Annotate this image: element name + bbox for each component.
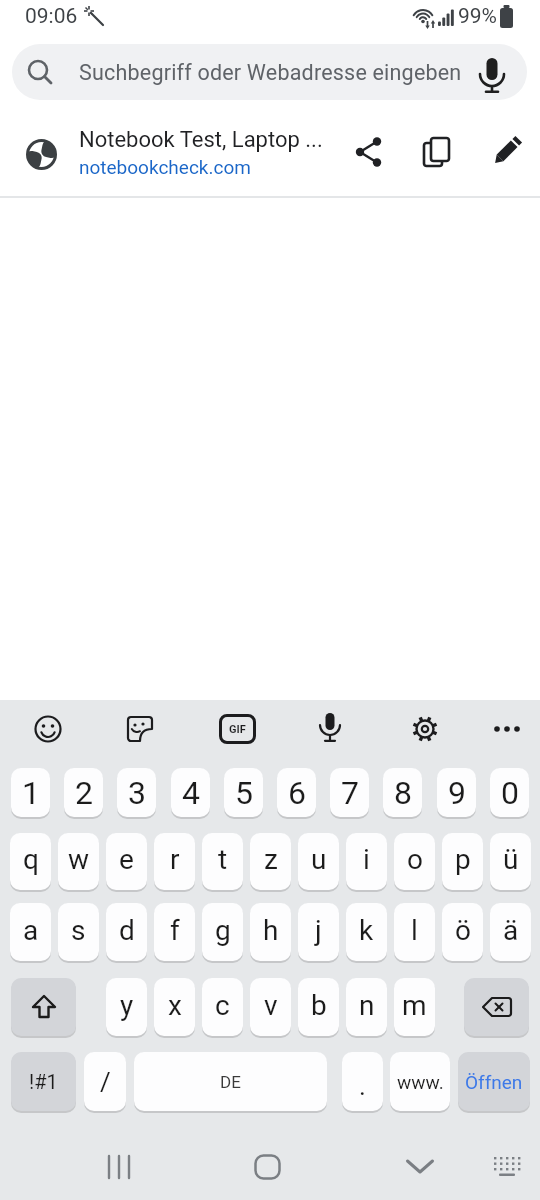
staticText: q: [23, 843, 39, 876]
button[interactable]: u: [298, 833, 339, 890]
button[interactable]: k: [346, 903, 387, 961]
button[interactable]: DE: [134, 1052, 327, 1111]
button[interactable]: ü: [490, 833, 531, 890]
button[interactable]: g: [202, 903, 243, 961]
button[interactable]: [243, 1142, 293, 1192]
button[interactable]: j: [298, 903, 339, 961]
staticText: b: [311, 989, 327, 1022]
staticText: r: [170, 843, 180, 876]
staticText: a: [23, 914, 39, 947]
button[interactable]: c: [202, 978, 243, 1036]
staticText: 3: [128, 774, 146, 812]
button[interactable]: 5: [224, 768, 263, 817]
button[interactable]: z: [250, 833, 291, 890]
button[interactable]: [308, 707, 352, 751]
button[interactable]: t: [202, 833, 243, 890]
staticText: .: [359, 1071, 366, 1101]
button[interactable]: e: [106, 833, 147, 890]
button[interactable]: 9: [437, 768, 476, 817]
button[interactable]: 3: [117, 768, 156, 817]
button[interactable]: ä: [490, 903, 531, 961]
staticText: u: [311, 843, 327, 876]
button[interactable]: 1: [11, 768, 50, 817]
staticText: /: [100, 1067, 111, 1097]
button[interactable]: q: [10, 833, 51, 890]
button[interactable]: a: [10, 903, 51, 961]
button[interactable]: Suchbegriff oder Webadresse eingeben: [12, 44, 527, 100]
button[interactable]: [403, 707, 447, 751]
button[interactable]: GIF: [219, 714, 256, 744]
button[interactable]: Öffnen: [458, 1052, 530, 1111]
staticText: GIF: [229, 723, 246, 736]
staticText: g: [215, 914, 231, 947]
staticText: f: [170, 914, 180, 947]
button[interactable]: w: [58, 833, 99, 890]
staticText: s: [71, 914, 86, 947]
button[interactable]: r: [154, 833, 195, 890]
button[interactable]: h: [250, 903, 291, 961]
button[interactable]: x: [154, 978, 195, 1036]
button[interactable]: 7: [330, 768, 369, 817]
button[interactable]: b: [298, 978, 339, 1036]
button[interactable]: n: [346, 978, 387, 1036]
button[interactable]: i: [346, 833, 387, 890]
button[interactable]: 0: [490, 768, 529, 817]
staticText: l: [411, 914, 418, 947]
staticText: Suchbegriff oder Webadresse eingeben: [79, 60, 462, 85]
staticText: 09:06: [25, 4, 78, 29]
staticText: ü: [503, 843, 519, 876]
button[interactable]: [414, 128, 462, 176]
button[interactable]: p: [442, 833, 483, 890]
button[interactable]: Notebook Test, Laptop ...: [0, 112, 540, 196]
staticText: x: [168, 989, 182, 1022]
staticText: 1: [22, 774, 40, 812]
button[interactable]: [348, 128, 396, 176]
button[interactable]: f: [154, 903, 195, 961]
button[interactable]: 4: [171, 768, 210, 817]
button[interactable]: [485, 707, 529, 751]
button[interactable]: !#1: [11, 1052, 76, 1111]
button[interactable]: .: [342, 1052, 383, 1111]
staticText: d: [119, 914, 135, 947]
button[interactable]: 8: [383, 768, 422, 817]
staticText: v: [264, 989, 278, 1022]
button[interactable]: [11, 978, 76, 1036]
staticText: 6: [288, 774, 306, 812]
staticText: 8: [394, 774, 412, 812]
button[interactable]: [395, 1142, 445, 1192]
staticText: e: [119, 843, 134, 876]
button[interactable]: l: [394, 903, 435, 961]
staticText: z: [264, 843, 278, 876]
staticText: h: [263, 914, 279, 947]
button[interactable]: 2: [64, 768, 103, 817]
button[interactable]: /: [84, 1052, 126, 1111]
staticText: 4: [182, 774, 200, 812]
button[interactable]: [26, 707, 70, 751]
button[interactable]: o: [394, 833, 435, 890]
button[interactable]: ö: [442, 903, 483, 961]
staticText: 9: [448, 774, 466, 812]
staticText: o: [407, 843, 423, 876]
staticText: n: [359, 989, 375, 1022]
button[interactable]: [482, 128, 530, 176]
button[interactable]: [118, 707, 162, 751]
staticText: k: [359, 914, 374, 947]
button[interactable]: m: [394, 978, 435, 1036]
staticText: 5: [235, 774, 253, 812]
button[interactable]: d: [106, 903, 147, 961]
button[interactable]: v: [250, 978, 291, 1036]
button[interactable]: s: [58, 903, 99, 961]
staticText: Öffnen: [465, 1071, 523, 1093]
button[interactable]: [464, 978, 529, 1036]
button[interactable]: www.: [390, 1052, 450, 1111]
staticText: ä: [503, 914, 519, 947]
staticText: i: [363, 843, 370, 876]
button[interactable]: [482, 1142, 532, 1192]
button[interactable]: y: [106, 978, 147, 1036]
staticText: c: [215, 989, 230, 1022]
staticText: www.: [397, 1071, 444, 1093]
button[interactable]: [94, 1142, 144, 1192]
staticText: m: [402, 989, 427, 1022]
button[interactable]: 6: [277, 768, 316, 817]
staticText: DE: [220, 1072, 241, 1092]
